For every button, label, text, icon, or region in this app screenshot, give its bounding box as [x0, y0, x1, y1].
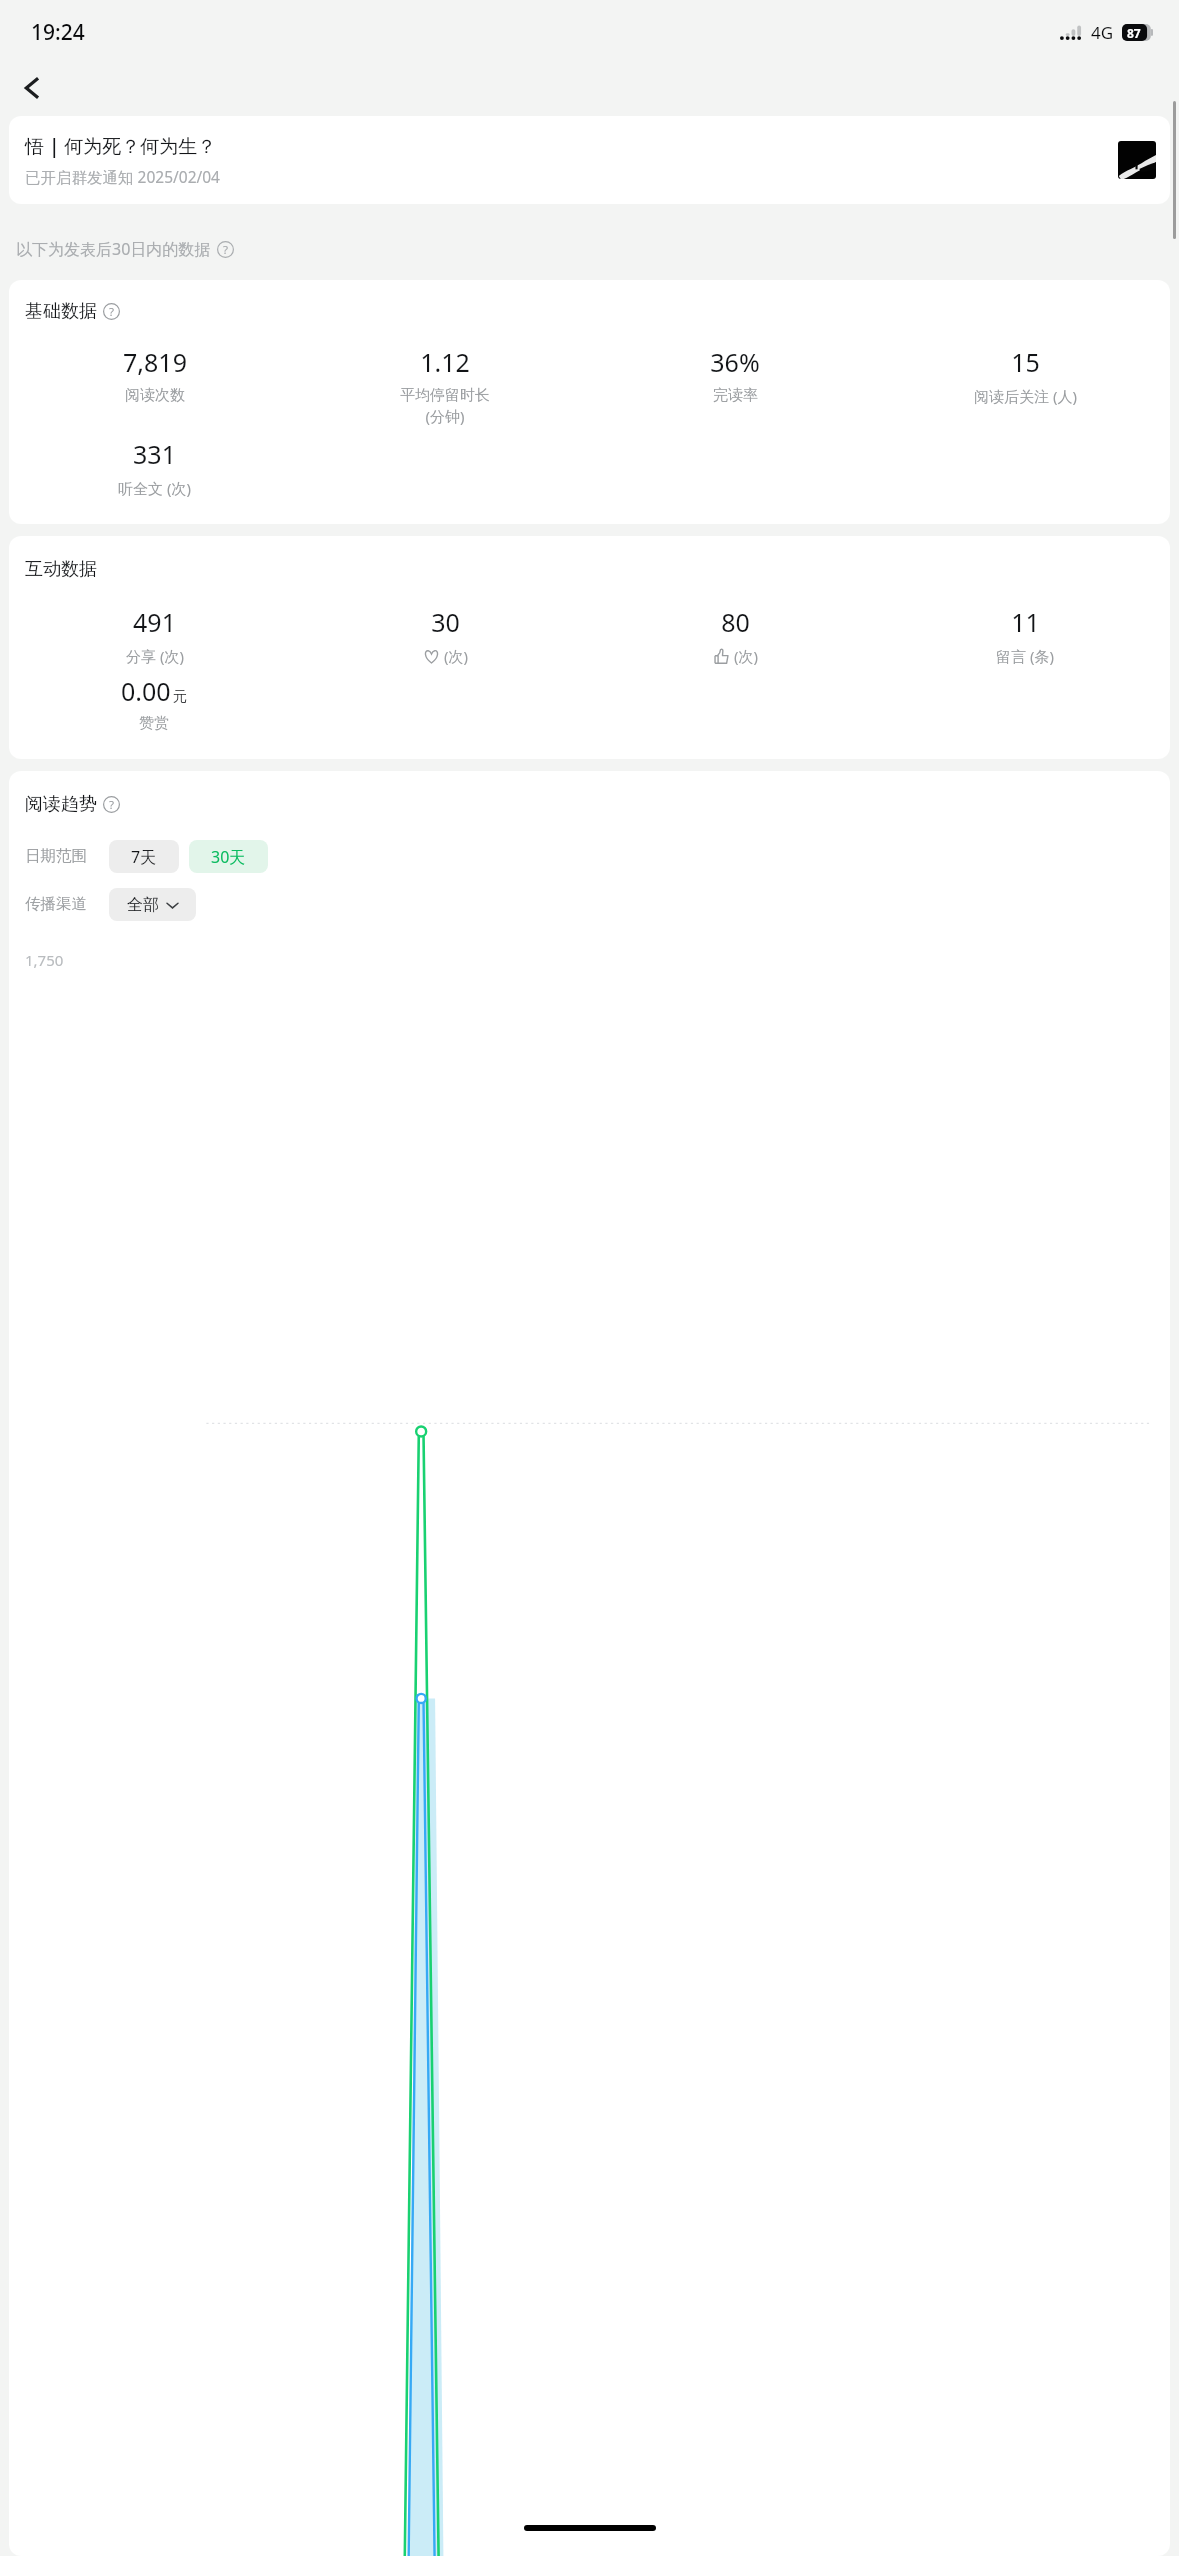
staticText: 完读率	[713, 386, 758, 405]
staticText: 悟 | 何为死？何为生？	[25, 133, 217, 159]
button[interactable]: Help	[103, 303, 120, 320]
staticText: 互动数据	[25, 558, 97, 581]
staticText: 30天	[211, 846, 246, 868]
staticText: 平均停留时长 (分钟)	[400, 386, 490, 427]
staticText: 7天	[131, 846, 157, 868]
staticText: (次)	[730, 646, 758, 666]
staticText: 4G	[1091, 21, 1114, 44]
staticText: 1,750	[25, 950, 64, 970]
staticText: 0.00	[121, 674, 171, 708]
staticText: (次)	[440, 646, 468, 666]
staticText: 分享 (次)	[126, 646, 184, 666]
staticText: 11	[1011, 605, 1040, 639]
staticText: 19:24	[31, 18, 85, 47]
staticText: 15	[1011, 345, 1040, 379]
button[interactable]: Help	[103, 796, 120, 813]
staticText: 80	[721, 605, 750, 639]
staticText: 阅读次数	[125, 386, 185, 405]
button[interactable]: Back	[8, 64, 56, 112]
staticText: 已开启群发通知 2025/02/04	[25, 166, 220, 187]
staticText: 331	[133, 437, 176, 471]
staticText: 元	[173, 688, 187, 706]
staticText: 87	[1127, 25, 1141, 41]
button[interactable]: 7天	[109, 840, 179, 873]
staticText: 30	[431, 605, 460, 639]
staticText: 491	[133, 605, 176, 639]
staticText: 听全文 (次)	[118, 478, 191, 498]
staticText: ?	[109, 304, 115, 320]
button[interactable]: 悟 | 何为死？何为生？	[9, 116, 1170, 204]
staticText: 阅读后关注 (人)	[974, 386, 1077, 406]
staticText: 7,819	[123, 345, 187, 379]
staticText: 留言 (条)	[996, 646, 1054, 666]
button[interactable]: Help	[217, 241, 234, 258]
staticText: 1.12	[420, 345, 470, 379]
button[interactable]: 全部	[109, 888, 196, 921]
staticText: ?	[223, 242, 229, 258]
staticText: 全部	[127, 895, 159, 915]
staticText: 赞赏	[139, 714, 169, 733]
button[interactable]: 30天	[189, 840, 268, 873]
staticText: 阅读趋势	[25, 793, 97, 816]
staticText: 日期范围	[25, 846, 87, 866]
staticText: ?	[109, 797, 115, 813]
staticText: 基础数据	[25, 300, 97, 323]
staticText: 传播渠道	[25, 894, 87, 914]
staticText: 36%	[710, 345, 760, 379]
staticText: 以下为发表后30日内的数据	[16, 238, 211, 260]
